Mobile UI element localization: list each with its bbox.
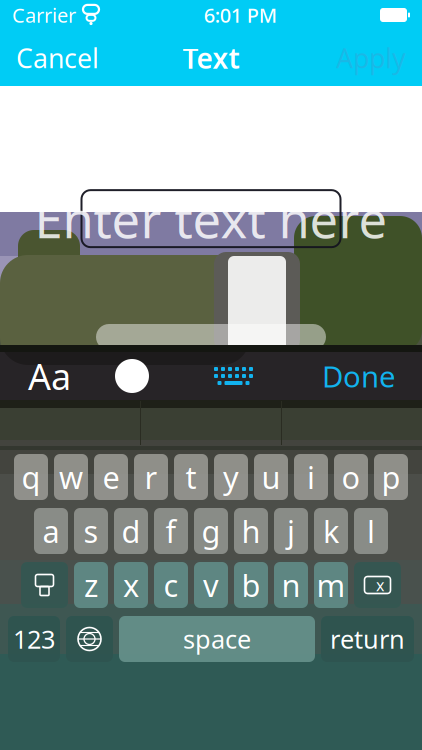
staticText: x [376, 574, 384, 596]
button[interactable]: t [174, 454, 208, 500]
button[interactable]: z [74, 562, 108, 608]
staticText: Enter text here [34, 185, 387, 252]
button[interactable]: b [234, 562, 268, 608]
staticText: Apply [336, 40, 406, 76]
staticText: b [241, 565, 260, 605]
staticText: d [121, 511, 140, 551]
button[interactable]: y [214, 454, 248, 500]
staticText: k [323, 511, 339, 551]
staticText: c [163, 565, 178, 605]
staticText: p [381, 457, 400, 497]
staticText: x [123, 565, 139, 605]
staticText: w [59, 457, 83, 497]
button[interactable]: Hide keyboard [204, 357, 262, 395]
staticText: return [330, 622, 405, 656]
button[interactable]: a [34, 508, 68, 554]
staticText: Carrier [12, 2, 76, 28]
staticText: u [261, 457, 280, 497]
staticText: Aa [28, 352, 71, 400]
staticText: n [281, 565, 300, 605]
staticText: t [185, 457, 196, 497]
button[interactable]: c [154, 562, 188, 608]
staticText: s [83, 511, 98, 551]
staticText: j [287, 511, 295, 551]
staticText: g [201, 511, 220, 551]
staticText: v [203, 565, 219, 605]
button[interactable]: space [119, 616, 315, 662]
button[interactable]: Shift [21, 562, 68, 608]
button[interactable]: o [334, 454, 368, 500]
button[interactable]: j [274, 508, 308, 554]
staticText: Text [182, 39, 239, 77]
staticText: f [165, 511, 176, 551]
button[interactable]: w [54, 454, 88, 500]
staticText: Done [322, 356, 396, 395]
staticText: z [84, 565, 98, 605]
button[interactable]: f [154, 508, 188, 554]
button[interactable]: Cancel [4, 32, 111, 84]
button[interactable]: v [194, 562, 228, 608]
staticText: q [21, 457, 40, 497]
button[interactable]: Next keyboard [66, 616, 113, 662]
staticText: 123 [13, 622, 55, 656]
button[interactable]: Font [12, 345, 87, 407]
button[interactable]: h [234, 508, 268, 554]
button[interactable]: m [314, 562, 348, 608]
button[interactable]: l [354, 508, 388, 554]
button[interactable]: e [94, 454, 128, 500]
staticText: h [241, 511, 260, 551]
button[interactable]: k [314, 508, 348, 554]
button[interactable]: n [274, 562, 308, 608]
staticText: r [144, 457, 157, 497]
button[interactable]: i [294, 454, 328, 500]
button[interactable]: Delete [354, 562, 401, 608]
button[interactable]: Text color [105, 353, 159, 399]
staticText: e [102, 457, 119, 497]
staticText: i [307, 457, 315, 497]
staticText: y [223, 457, 239, 497]
button[interactable]: x [114, 562, 148, 608]
button[interactable]: s [74, 508, 108, 554]
button[interactable]: d [114, 508, 148, 554]
button[interactable]: 123 [8, 616, 60, 662]
staticText: 6:01 PM [204, 2, 277, 28]
staticText: a [42, 511, 59, 551]
staticText: m [316, 565, 345, 605]
button[interactable]: Apply [324, 32, 418, 84]
button[interactable]: q [14, 454, 48, 500]
button[interactable]: p [374, 454, 408, 500]
button[interactable]: r [134, 454, 168, 500]
button[interactable]: g [194, 508, 228, 554]
staticText: o [341, 457, 360, 497]
button[interactable]: Done [308, 348, 410, 403]
button[interactable]: return [321, 616, 414, 662]
staticText: Cancel [16, 40, 99, 76]
staticText: space [183, 622, 251, 656]
staticText: l [367, 511, 375, 551]
button[interactable]: u [254, 454, 288, 500]
